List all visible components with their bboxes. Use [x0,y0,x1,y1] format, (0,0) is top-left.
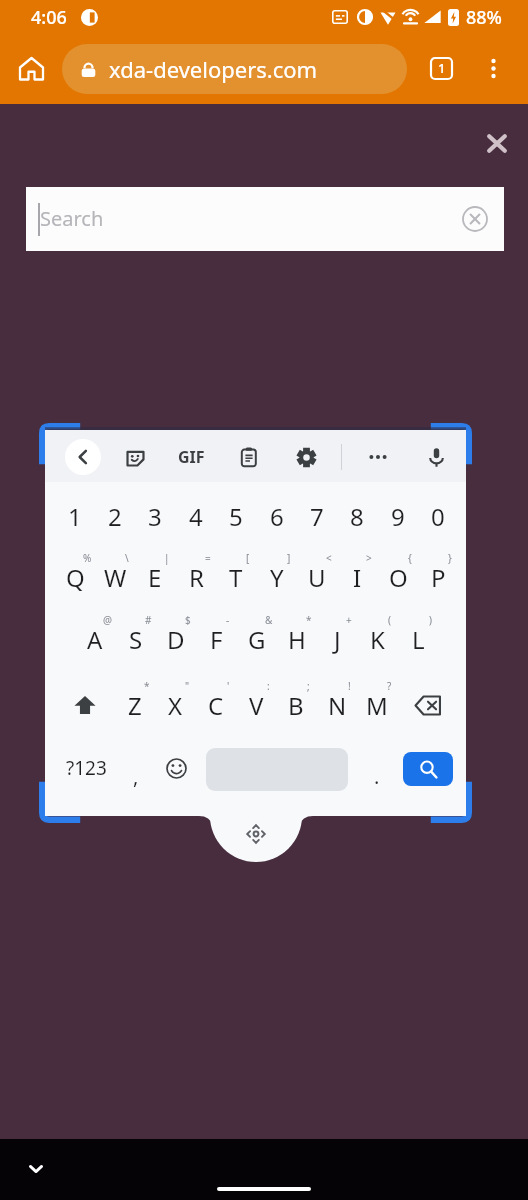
button[interactable]: Search [403,752,453,786]
staticText: % [83,551,92,565]
button[interactable]: $ [156,611,196,667]
button[interactable]: 4 [176,488,216,544]
staticText: K [370,623,385,656]
button[interactable]: 0 [418,488,458,544]
button[interactable]: } [418,549,458,605]
staticText: : [267,679,270,693]
staticText: Q [66,561,85,594]
button[interactable]: Home [12,49,50,87]
button[interactable]: 2 [95,488,135,544]
button[interactable]: Clipboard [230,438,268,476]
button[interactable]: Close [476,122,518,164]
staticText: ! [348,679,351,693]
button[interactable]: ' [196,677,236,733]
button[interactable]: % [55,549,95,605]
button[interactable]: 7 [297,488,337,544]
staticText: 1 [68,500,82,533]
staticText: | [164,551,170,565]
button[interactable]: Emoji [154,742,198,794]
button[interactable]: < [297,549,337,605]
button[interactable]: Search [26,187,504,251]
button[interactable]: 1 [55,488,95,544]
staticText: } [448,551,452,565]
button[interactable]: GIF [169,441,213,473]
staticText: @ [103,613,112,627]
button[interactable]: 8 [337,488,377,544]
staticText: R [189,561,204,594]
staticText: X [168,689,183,722]
staticText: 2 [108,500,122,533]
button[interactable]: More options [474,49,512,87]
button[interactable]: Stickers [116,438,154,476]
staticText: 3 [148,500,162,533]
button[interactable]: 6 [257,488,297,544]
button[interactable]: 9 [378,488,418,544]
button[interactable]: Backspace [397,677,458,733]
staticText: C [208,689,224,722]
button[interactable]: | [135,549,175,605]
staticText: ) [429,613,432,627]
staticText: E [148,561,162,594]
button[interactable]: ?123 [52,742,120,794]
button[interactable]: , [116,742,156,794]
button[interactable]: Hide keyboard [15,1148,57,1190]
button[interactable]: Settings [287,438,325,476]
button[interactable]: More keyboard options [359,438,397,476]
button[interactable]: Clear search [456,200,494,238]
staticText: Search [40,205,104,232]
staticText: < [326,551,332,565]
button[interactable]: ? [357,677,397,733]
staticText: 4:06 [31,5,67,30]
staticText: Y [270,561,284,594]
button[interactable]: > [337,549,377,605]
staticText: " [185,679,190,693]
button[interactable]: ] [257,549,297,605]
button[interactable]: Move keyboard [210,816,302,868]
button[interactable]: [ [216,549,256,605]
staticText: * [144,679,150,693]
button[interactable]: xda-developers.com [62,44,407,94]
button[interactable]: - [196,611,236,667]
staticText: L [412,623,425,656]
staticText: GIF [178,446,205,468]
button[interactable]: " [155,677,195,733]
button[interactable]: { [378,549,418,605]
button[interactable]: * [277,611,317,667]
staticText: B [288,689,304,722]
staticText: A [87,623,103,656]
button[interactable]: ; [276,677,316,733]
button[interactable]: 5 [216,488,256,544]
button[interactable]: ( [357,611,397,667]
button[interactable]: ! [317,677,357,733]
button[interactable]: 3 [135,488,175,544]
staticText: G [248,623,266,656]
button[interactable]: : [236,677,276,733]
button[interactable]: * [115,677,155,733]
button[interactable]: & [237,611,277,667]
button[interactable]: ) [398,611,438,667]
button[interactable]: \ [95,549,135,605]
button[interactable]: Back [65,439,101,475]
staticText: 7 [310,500,324,533]
staticText: \ [125,551,129,565]
button[interactable]: Shift [55,677,115,733]
button[interactable]: + [317,611,357,667]
staticText: [ [246,551,250,565]
button[interactable]: @ [75,611,115,667]
button[interactable]: Tabs [422,49,460,87]
staticText: P [431,561,446,594]
staticText: T [229,561,243,594]
staticText: D [167,623,185,656]
staticText: U [308,561,326,594]
button[interactable]: . [357,742,397,794]
button[interactable]: = [176,549,216,605]
staticText: M [366,689,388,722]
staticText: S [129,623,143,656]
button[interactable]: Voice input [417,438,455,476]
staticText: ?123 [66,755,107,781]
staticText: ; [307,679,310,693]
staticText: $ [185,613,191,627]
button[interactable]: # [116,611,156,667]
staticText: N [328,689,347,722]
